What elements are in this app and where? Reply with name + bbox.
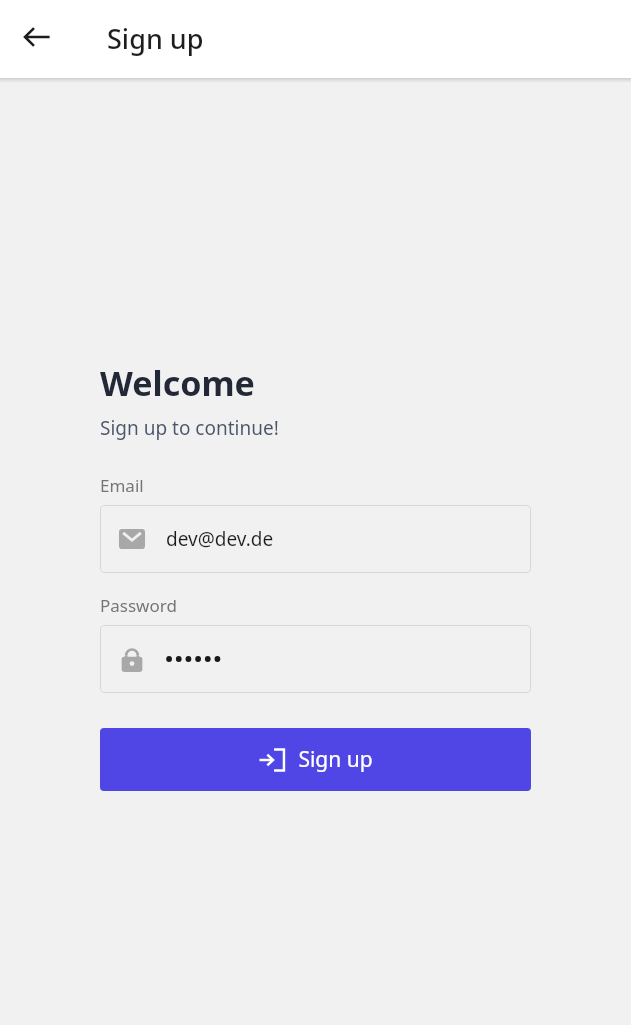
button[interactable]	[100, 625, 531, 693]
button[interactable]: Back	[9, 9, 65, 65]
staticText: Sign up to continue!	[100, 415, 279, 441]
button[interactable]: Sign up	[100, 728, 531, 791]
button[interactable]: dev@dev.de	[100, 505, 531, 573]
staticText: Sign up	[107, 20, 204, 57]
staticText: Sign up	[298, 745, 373, 774]
staticText: Welcome	[100, 360, 255, 406]
staticText: Email	[100, 474, 144, 497]
staticText: dev@dev.de	[166, 526, 274, 552]
staticText: Password	[100, 594, 177, 617]
